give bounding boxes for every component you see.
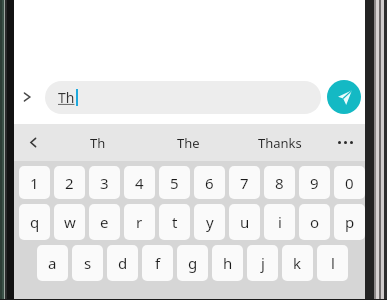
- button[interactable]: p: [334, 204, 365, 240]
- button[interactable]: 4: [124, 166, 155, 199]
- button[interactable]: 0: [334, 166, 365, 199]
- button[interactable]: j: [247, 245, 278, 281]
- button[interactable]: Th: [45, 81, 321, 114]
- button[interactable]: 8: [264, 166, 295, 199]
- staticText: 9: [310, 173, 319, 193]
- staticText: i: [278, 212, 282, 232]
- button[interactable]: y: [194, 204, 225, 240]
- button[interactable]: a: [37, 245, 68, 281]
- staticText: k: [293, 253, 302, 273]
- button[interactable]: 9: [299, 166, 330, 199]
- button[interactable]: The: [143, 124, 234, 161]
- staticText: f: [155, 253, 161, 273]
- button[interactable]: 2: [54, 166, 85, 199]
- staticText: Th: [58, 88, 75, 107]
- button[interactable]: 3: [89, 166, 120, 199]
- staticText: d: [118, 253, 128, 273]
- button[interactable]: Thanks: [234, 124, 325, 161]
- staticText: 1: [30, 173, 39, 193]
- button[interactable]: k: [282, 245, 313, 281]
- button[interactable]: 7: [229, 166, 260, 199]
- staticText: Thanks: [258, 134, 302, 152]
- staticText: 5: [170, 173, 179, 193]
- button[interactable]: i: [264, 204, 295, 240]
- staticText: h: [223, 253, 233, 273]
- staticText: 6: [205, 173, 214, 193]
- staticText: 2: [65, 173, 74, 193]
- staticText: a: [48, 253, 57, 273]
- button[interactable]: t: [159, 204, 190, 240]
- staticText: 3: [100, 173, 109, 193]
- button[interactable]: 6: [194, 166, 225, 199]
- staticText: 7: [240, 173, 249, 193]
- button[interactable]: w: [54, 204, 85, 240]
- button[interactable]: h: [212, 245, 243, 281]
- button[interactable]: e: [89, 204, 120, 240]
- staticText: w: [64, 212, 76, 232]
- staticText: q: [30, 212, 40, 232]
- staticText: o: [310, 212, 320, 232]
- staticText: 4: [135, 173, 144, 193]
- staticText: 0: [345, 173, 354, 193]
- staticText: e: [100, 212, 109, 232]
- staticText: The: [177, 134, 200, 152]
- button[interactable]: l: [317, 245, 348, 281]
- button[interactable]: f: [142, 245, 173, 281]
- staticText: y: [206, 212, 214, 232]
- button[interactable]: 5: [159, 166, 190, 199]
- button[interactable]: g: [177, 245, 208, 281]
- button[interactable]: Previous suggestions: [14, 124, 52, 161]
- button[interactable]: Send: [327, 80, 361, 114]
- button[interactable]: r: [124, 204, 155, 240]
- staticText: j: [261, 253, 265, 273]
- staticText: g: [188, 253, 198, 273]
- staticText: r: [136, 212, 143, 232]
- button[interactable]: Expand options: [14, 84, 40, 110]
- staticText: t: [172, 212, 178, 232]
- staticText: l: [331, 253, 335, 273]
- button[interactable]: o: [299, 204, 330, 240]
- button[interactable]: u: [229, 204, 260, 240]
- staticText: 8: [275, 173, 284, 193]
- staticText: p: [345, 212, 355, 232]
- button[interactable]: d: [107, 245, 138, 281]
- button[interactable]: 1: [19, 166, 50, 199]
- button[interactable]: Th: [52, 124, 143, 161]
- staticText: s: [84, 253, 92, 273]
- button[interactable]: More options: [325, 124, 365, 161]
- staticText: Th: [90, 134, 106, 152]
- button[interactable]: q: [19, 204, 50, 240]
- staticText: u: [240, 212, 250, 232]
- button[interactable]: s: [72, 245, 103, 281]
